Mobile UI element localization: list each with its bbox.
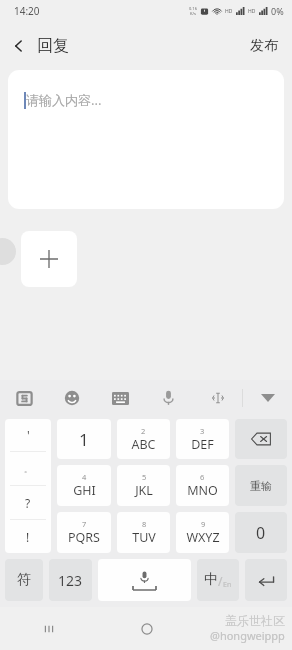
button[interactable]: Space, voice input: [98, 559, 191, 601]
staticText: 123: [58, 571, 83, 590]
staticText: 。: [24, 464, 32, 474]
button[interactable]: Sogou input: [0, 380, 48, 416]
staticText: 请输入内容...: [26, 91, 102, 109]
button[interactable]: Voice input: [144, 380, 193, 416]
staticText: 4: [82, 472, 87, 482]
button[interactable]: Switch Chinese English: [197, 559, 239, 601]
button[interactable]: Home: [98, 607, 195, 650]
button[interactable]: 123: [49, 559, 92, 601]
staticText: DEF: [191, 436, 214, 453]
button[interactable]: 6: [176, 465, 229, 506]
staticText: 回复: [37, 36, 69, 56]
staticText: !: [26, 529, 30, 545]
staticText: 6: [200, 472, 205, 482]
staticText: 中: [204, 571, 218, 589]
button[interactable]: 符: [5, 559, 43, 601]
other: Back: [10, 37, 28, 55]
staticText: JKL: [135, 482, 153, 499]
staticText: @hongweippp: [210, 628, 285, 643]
button[interactable]: 2: [117, 419, 170, 459]
staticText: /: [218, 573, 223, 589]
staticText: 盖乐世社区: [225, 613, 285, 628]
staticText: MNO: [187, 482, 218, 499]
button[interactable]: Recents: [0, 607, 98, 650]
button[interactable]: Cursor control: [193, 380, 242, 416]
staticText: PQRS: [68, 529, 100, 546]
button[interactable]: 4: [57, 465, 111, 506]
staticText: ': [27, 427, 30, 443]
staticText: TUV: [132, 529, 156, 546]
staticText: ABC: [131, 436, 156, 453]
staticText: 重输: [250, 479, 272, 493]
staticText: 5: [142, 472, 147, 482]
button[interactable]: 9: [176, 512, 229, 553]
staticText: 0%: [271, 5, 284, 17]
button[interactable]: 1: [57, 419, 111, 459]
staticText: ?: [25, 495, 31, 511]
button[interactable]: Back: [195, 607, 292, 650]
staticText: GHI: [73, 482, 96, 499]
button[interactable]: Keyboard layout: [96, 380, 144, 416]
button[interactable]: ?: [5, 486, 51, 519]
staticText: 7: [82, 519, 87, 529]
button[interactable]: 7: [57, 512, 111, 553]
button[interactable]: Emoji: [48, 380, 96, 416]
staticText: HD: [248, 8, 256, 15]
staticText: En: [223, 580, 232, 590]
staticText: 0: [256, 522, 266, 544]
button[interactable]: 发布: [236, 27, 292, 65]
staticText: 3: [200, 426, 205, 436]
button[interactable]: Add image: [21, 231, 77, 287]
button[interactable]: 8: [117, 512, 170, 553]
button[interactable]: Enter: [245, 559, 287, 601]
staticText: K/s: [190, 11, 196, 16]
button[interactable]: 5: [117, 465, 170, 506]
staticText: HD: [225, 8, 233, 15]
staticText: 1: [79, 428, 89, 451]
staticText: 2: [141, 426, 146, 436]
staticText: 14:20: [14, 4, 40, 18]
staticText: 9: [201, 519, 206, 529]
staticText: 发布: [250, 37, 278, 55]
button[interactable]: 0: [235, 512, 287, 553]
button[interactable]: Backspace: [235, 419, 287, 459]
button[interactable]: 重输: [235, 465, 287, 506]
button[interactable]: 请输入内容...: [8, 70, 284, 209]
button[interactable]: Floating handle: [0, 238, 16, 265]
staticText: 0.16: [189, 6, 197, 11]
button[interactable]: !: [5, 520, 51, 553]
button[interactable]: Hide keyboard: [243, 380, 292, 416]
button[interactable]: Back: [0, 28, 79, 64]
button[interactable]: ': [5, 419, 51, 451]
staticText: 符: [17, 571, 31, 589]
staticText: 8: [142, 519, 147, 529]
button[interactable]: 3: [176, 419, 229, 459]
staticText: WXYZ: [186, 529, 220, 546]
